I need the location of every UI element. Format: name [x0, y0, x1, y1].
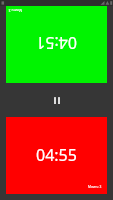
button[interactable]: 04:55 — [6, 117, 107, 194]
staticText: Moves: 3 — [8, 8, 22, 12]
staticText: Moves: 3 — [88, 185, 102, 189]
staticText: 04:55 — [36, 144, 77, 166]
staticText: 04:51 — [36, 32, 77, 54]
button[interactable]: 04:51 — [6, 6, 107, 83]
button[interactable]: Pause — [47, 90, 67, 110]
